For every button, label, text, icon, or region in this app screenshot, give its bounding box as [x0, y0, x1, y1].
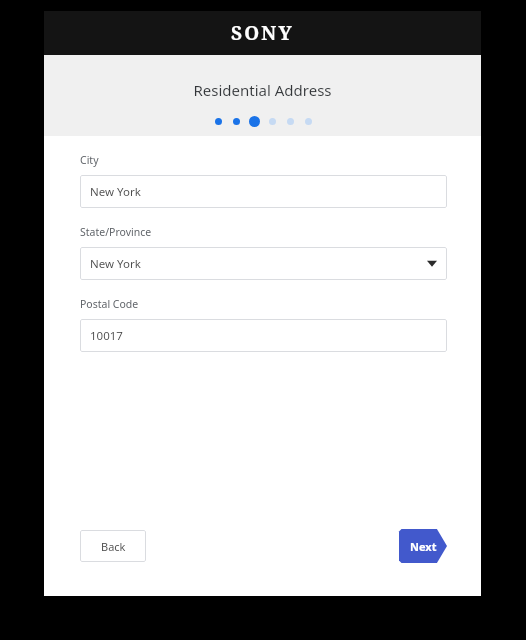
- staticText: City: [80, 153, 99, 167]
- button[interactable]: City: [80, 175, 447, 208]
- staticText: New York: [90, 256, 141, 272]
- staticText: SONY: [231, 20, 294, 46]
- staticText: State/Province: [80, 225, 152, 239]
- staticText: 10017: [90, 328, 123, 344]
- staticText: Residential Address: [44, 80, 481, 100]
- button[interactable]: Postal Code: [80, 319, 447, 352]
- staticText: Back: [101, 539, 126, 554]
- button[interactable]: State/Province: [80, 247, 447, 280]
- staticText: New York: [90, 184, 141, 200]
- button[interactable]: Back: [80, 530, 146, 562]
- staticText: Next: [410, 539, 437, 554]
- staticText: Postal Code: [80, 297, 139, 311]
- button[interactable]: Next: [399, 529, 447, 563]
